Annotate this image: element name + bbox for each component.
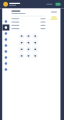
- button[interactable]: Navigation item: [2, 30, 9, 36]
- button[interactable]: Navigation item: [2, 66, 9, 72]
- button[interactable]: Dial key: [25, 46, 31, 52]
- button[interactable]: Navigation item: [2, 54, 9, 60]
- button[interactable]: Dial key: [25, 53, 31, 59]
- button[interactable]: Navigation item: [2, 36, 9, 42]
- button[interactable]: Dial key: [25, 33, 31, 39]
- button[interactable]: Navigation item: [2, 60, 9, 66]
- button[interactable]: Dial key: [32, 33, 38, 39]
- button[interactable]: Dial key: [19, 33, 25, 39]
- button[interactable]: Dial key: [19, 40, 25, 46]
- button[interactable]: Dial key: [19, 46, 25, 52]
- button[interactable]: Navigation item: [2, 42, 9, 48]
- button[interactable]: Navigation item: [2, 24, 9, 30]
- button[interactable]: Status available: [55, 3, 60, 6]
- button[interactable]: Dial key: [32, 40, 38, 46]
- button[interactable]: Navigation item: [2, 48, 9, 54]
- button[interactable]: Dial key: [19, 53, 25, 59]
- button[interactable]: Navigation item: [2, 18, 9, 24]
- button[interactable]: Dial key: [25, 40, 31, 46]
- button[interactable]: Dial key: [32, 46, 38, 52]
- button[interactable]: Dial key: [32, 53, 38, 59]
